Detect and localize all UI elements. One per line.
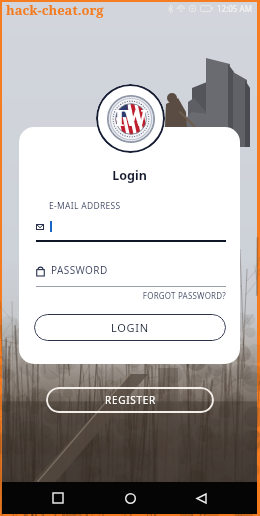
button[interactable]: LOGIN [34,314,226,341]
staticText: LOGIN [111,320,149,335]
staticText: hack-cheat.org [6,1,104,19]
staticText: REGISTER [105,393,156,407]
button[interactable]: Home [114,482,146,514]
button[interactable]: Back [185,482,217,514]
button[interactable]: FORGOT PASSWORD? [36,290,226,301]
staticText: 12:05 AM [217,3,252,14]
button[interactable]: Recents [42,482,74,514]
staticText: IW [115,104,147,133]
staticText: E-MAIL ADDRESS [49,200,121,212]
staticText: Login [19,167,240,184]
button[interactable]: REGISTER [46,387,214,413]
staticText: PASSWORD [51,263,108,277]
